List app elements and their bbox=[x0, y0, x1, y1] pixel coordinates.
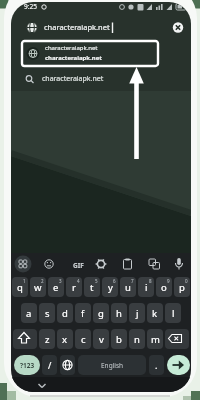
staticText: characteraiapk.net bbox=[44, 22, 110, 32]
button[interactable]: j bbox=[129, 303, 145, 323]
button[interactable]: h bbox=[111, 303, 127, 323]
button[interactable] bbox=[20, 17, 168, 38]
staticText: n bbox=[134, 333, 140, 346]
button[interactable]: i bbox=[138, 277, 154, 297]
staticText: l bbox=[172, 307, 175, 320]
button[interactable]: k bbox=[147, 303, 163, 323]
button[interactable]: x bbox=[57, 329, 73, 349]
button[interactable]: ?123 bbox=[14, 355, 40, 375]
staticText: b bbox=[116, 333, 122, 346]
button[interactable] bbox=[14, 255, 32, 273]
staticText: a bbox=[26, 307, 32, 320]
button[interactable] bbox=[66, 255, 84, 273]
button[interactable] bbox=[171, 20, 186, 35]
button[interactable]: n bbox=[129, 329, 145, 349]
button[interactable]: q bbox=[12, 277, 28, 297]
button[interactable]: t bbox=[84, 277, 100, 297]
staticText: English bbox=[101, 361, 124, 370]
button[interactable] bbox=[144, 255, 162, 273]
staticText: f bbox=[81, 307, 85, 320]
button[interactable]: w bbox=[30, 277, 46, 297]
staticText: characteraiapk.net bbox=[42, 74, 104, 84]
staticText: z bbox=[45, 333, 50, 346]
staticText: 2 bbox=[41, 278, 44, 284]
button[interactable] bbox=[165, 329, 189, 349]
staticText: 3 bbox=[59, 278, 62, 284]
button[interactable]: d bbox=[57, 303, 73, 323]
staticText: y bbox=[108, 281, 113, 294]
button[interactable]: . bbox=[149, 355, 164, 375]
staticText: e bbox=[53, 281, 59, 294]
staticText: d bbox=[62, 307, 68, 320]
button[interactable] bbox=[13, 329, 37, 349]
button[interactable]: o bbox=[156, 277, 172, 297]
button[interactable]: l bbox=[165, 303, 181, 323]
staticText: s bbox=[45, 307, 50, 320]
staticText: w bbox=[34, 281, 42, 294]
button[interactable]: y bbox=[102, 277, 118, 297]
button[interactable]: p bbox=[174, 277, 190, 297]
button[interactable] bbox=[40, 255, 58, 273]
staticText: 8 bbox=[149, 278, 152, 284]
staticText: / bbox=[48, 359, 52, 371]
button[interactable] bbox=[118, 255, 136, 273]
button[interactable]: f bbox=[75, 303, 91, 323]
staticText: j bbox=[136, 307, 139, 320]
staticText: characteraiapk.net bbox=[45, 54, 102, 62]
staticText: m bbox=[151, 333, 160, 346]
staticText: x bbox=[62, 333, 68, 346]
staticText: 0 bbox=[185, 278, 188, 284]
staticText: 1 bbox=[23, 278, 26, 284]
staticText: c bbox=[81, 333, 86, 346]
staticText: 6 bbox=[113, 278, 116, 284]
staticText: 5 bbox=[95, 278, 98, 284]
staticText: 4 bbox=[77, 278, 80, 284]
button[interactable]: e bbox=[48, 277, 64, 297]
staticText: q bbox=[17, 281, 23, 294]
staticText: ?123 bbox=[20, 361, 35, 370]
staticText: 7 bbox=[131, 278, 134, 284]
staticText: p bbox=[179, 281, 185, 294]
staticText: r bbox=[72, 281, 76, 294]
staticText: h bbox=[116, 307, 122, 320]
staticText: t bbox=[90, 281, 94, 294]
button[interactable]: m bbox=[147, 329, 163, 349]
button[interactable] bbox=[34, 379, 50, 391]
button[interactable]: v bbox=[93, 329, 109, 349]
button[interactable]: / bbox=[42, 355, 57, 375]
button[interactable] bbox=[170, 255, 188, 273]
staticText: v bbox=[99, 333, 104, 346]
staticText: o bbox=[161, 281, 167, 294]
button[interactable]: English bbox=[78, 355, 146, 375]
button[interactable]: c bbox=[75, 329, 91, 349]
staticText: g bbox=[98, 307, 104, 320]
staticText: k bbox=[152, 307, 158, 320]
button[interactable]: b bbox=[111, 329, 127, 349]
staticText: i bbox=[145, 281, 148, 294]
staticText: 9:25 bbox=[24, 2, 37, 11]
button[interactable] bbox=[22, 69, 162, 89]
button[interactable] bbox=[167, 355, 190, 375]
button[interactable]: s bbox=[39, 303, 55, 323]
button[interactable]: u bbox=[120, 277, 136, 297]
button[interactable]: g bbox=[93, 303, 109, 323]
staticText: characteraiapk.net bbox=[45, 44, 98, 52]
staticText: . bbox=[155, 359, 158, 371]
button[interactable]: z bbox=[39, 329, 55, 349]
button[interactable]: r bbox=[66, 277, 82, 297]
staticText: GIF bbox=[73, 261, 84, 270]
staticText: 9 bbox=[167, 278, 170, 284]
button[interactable] bbox=[24, 43, 156, 64]
button[interactable] bbox=[92, 255, 110, 273]
button[interactable]: a bbox=[21, 303, 37, 323]
button[interactable] bbox=[60, 355, 75, 375]
staticText: u bbox=[125, 281, 131, 294]
